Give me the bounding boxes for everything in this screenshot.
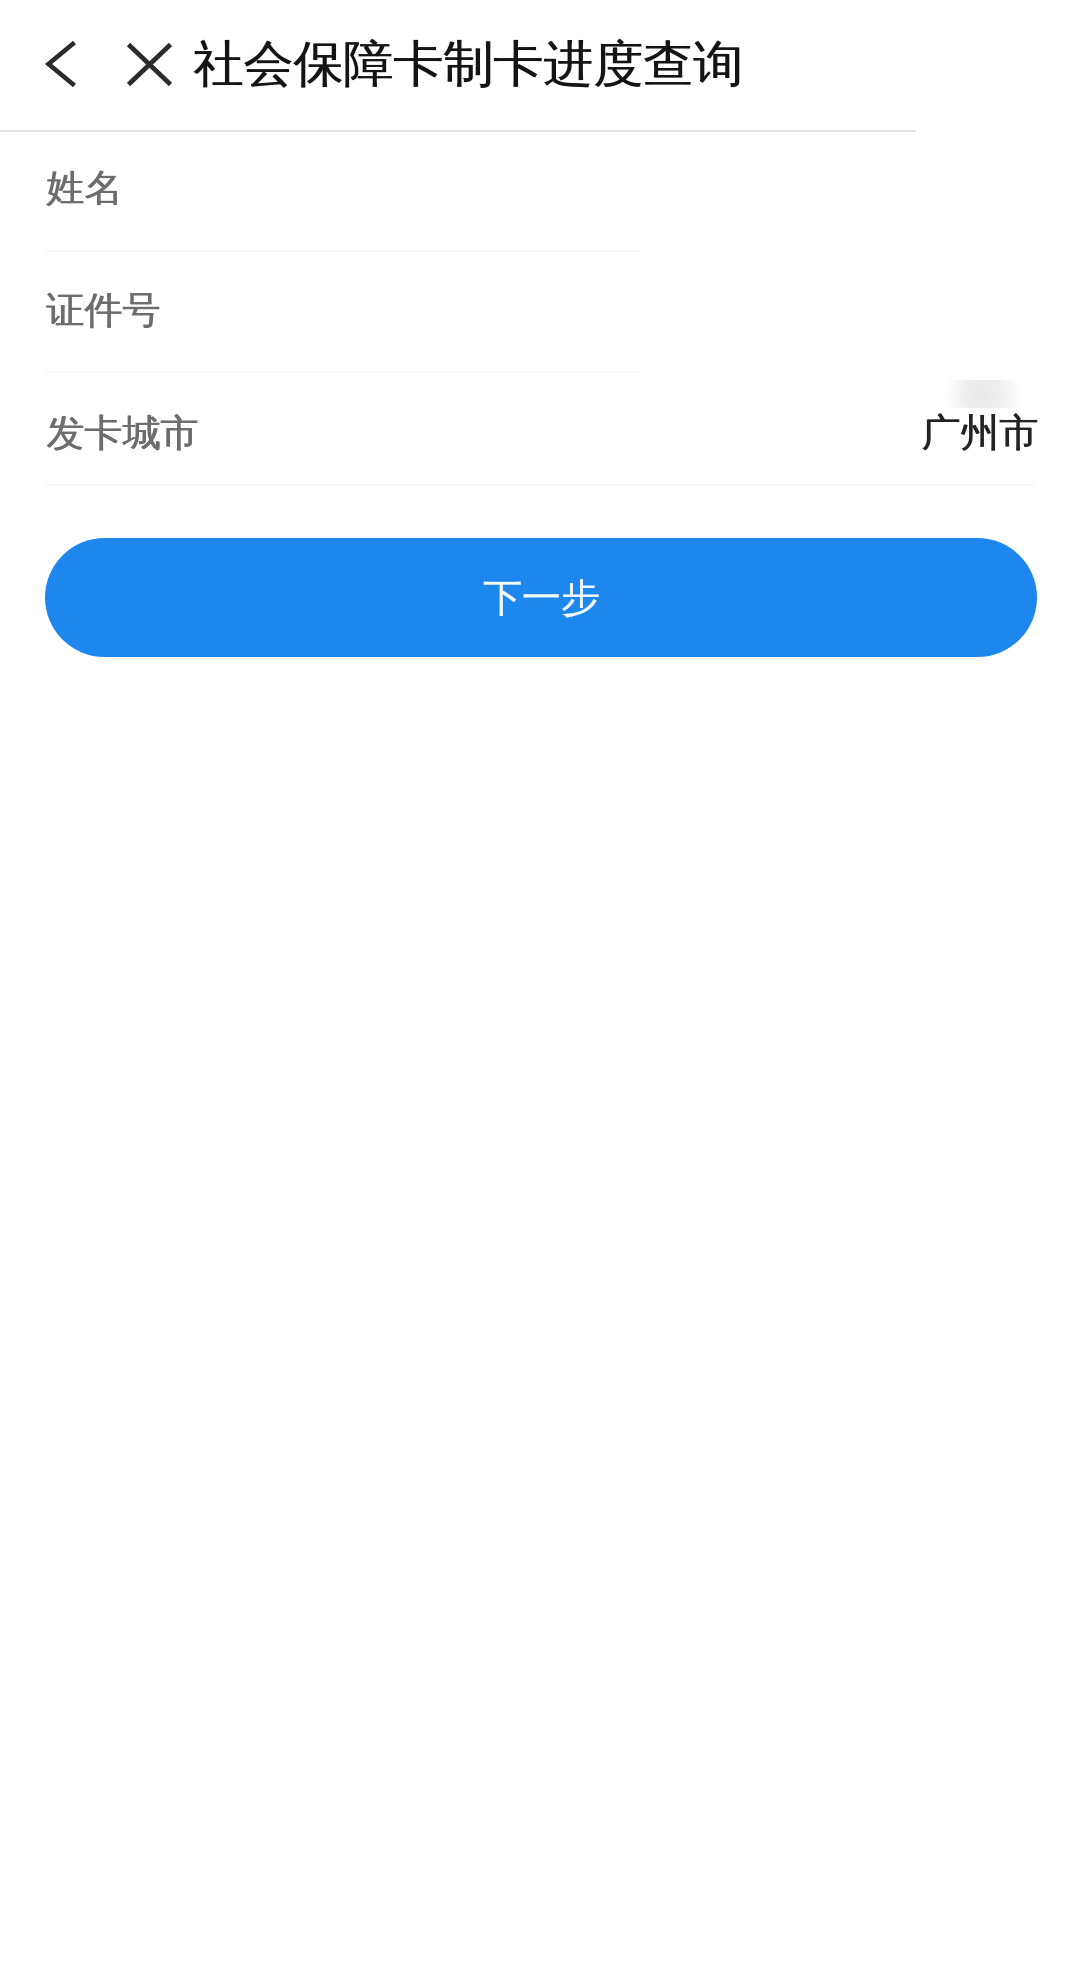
staticText: 社会保障卡制卡进度查询 — [194, 33, 744, 96]
staticText: 广州市 — [921, 408, 1038, 457]
button[interactable]: 下一步 — [45, 538, 1037, 657]
staticText: 姓名 — [47, 164, 123, 212]
button[interactable]: Close — [118, 34, 182, 98]
button[interactable]: 发卡城市 — [0, 372, 1080, 485]
staticText: 发卡城市 — [47, 409, 199, 457]
staticText: 社会保障卡制卡进度查询 — [193, 33, 743, 96]
button[interactable]: 证件号 — [0, 251, 1080, 372]
staticText: 广州市 — [922, 408, 1039, 457]
button[interactable]: Back — [21, 32, 85, 96]
staticText: 证件号 — [47, 286, 161, 334]
staticText: 证件号 — [46, 286, 160, 334]
button[interactable]: 姓名 — [0, 131, 1080, 251]
staticText: 下一步 — [483, 573, 600, 622]
staticText: 姓名 — [46, 164, 122, 212]
staticText: 发卡城市 — [46, 409, 198, 457]
